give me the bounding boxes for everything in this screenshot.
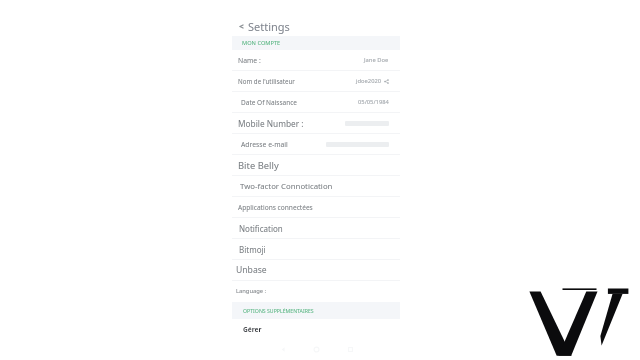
- staticText: MON COMPTE: [242, 39, 281, 47]
- staticText: Bite Belly: [238, 159, 279, 172]
- staticText: Bitmoji: [239, 244, 266, 255]
- button[interactable]: Two-factor Connotication: [232, 176, 400, 196]
- button[interactable]: Recent apps: [346, 345, 355, 354]
- staticText: Adresse e-mail: [241, 140, 288, 149]
- staticText: Date Of Naissance: [241, 98, 298, 107]
- staticText: Jane Doe: [364, 56, 389, 64]
- staticText: OPTIONS SUPPLÉMENTAIRES: [243, 307, 314, 314]
- button[interactable]: Language :: [232, 281, 400, 301]
- button[interactable]: Bite Belly: [232, 155, 400, 175]
- staticText: Two-factor Connotication: [240, 181, 333, 192]
- button[interactable]: Name :: [232, 50, 400, 70]
- button[interactable]: Home: [312, 345, 321, 354]
- button[interactable]: Mobile Number :: [232, 113, 400, 133]
- staticText: Settings: [248, 19, 290, 34]
- staticText: Language :: [236, 287, 267, 295]
- staticText: Gérer: [243, 325, 262, 334]
- staticText: Mobile Number :: [238, 118, 304, 129]
- staticText: Name :: [238, 56, 261, 65]
- button[interactable]: Bitmoji: [232, 239, 400, 259]
- staticText: 05/05/1984: [358, 98, 389, 106]
- button[interactable]: Gérer: [232, 319, 400, 339]
- staticText: Notification: [239, 223, 283, 234]
- staticText: Unbase: [236, 264, 267, 276]
- button[interactable]: Back: [232, 17, 400, 36]
- staticText: Applications connectées: [238, 203, 313, 212]
- button[interactable]: Notification: [232, 218, 400, 238]
- other: Back: [238, 23, 245, 30]
- staticText: jdoe2020: [356, 77, 382, 85]
- button[interactable]: Nom de l'utilisateur: [232, 71, 400, 91]
- staticText: Nom de l'utilisateur: [238, 77, 295, 85]
- button[interactable]: Adresse e-mail: [232, 134, 400, 154]
- button[interactable]: Unbase: [232, 260, 400, 280]
- button[interactable]: Date Of Naissance: [232, 92, 400, 112]
- button[interactable]: Applications connectées: [232, 197, 400, 217]
